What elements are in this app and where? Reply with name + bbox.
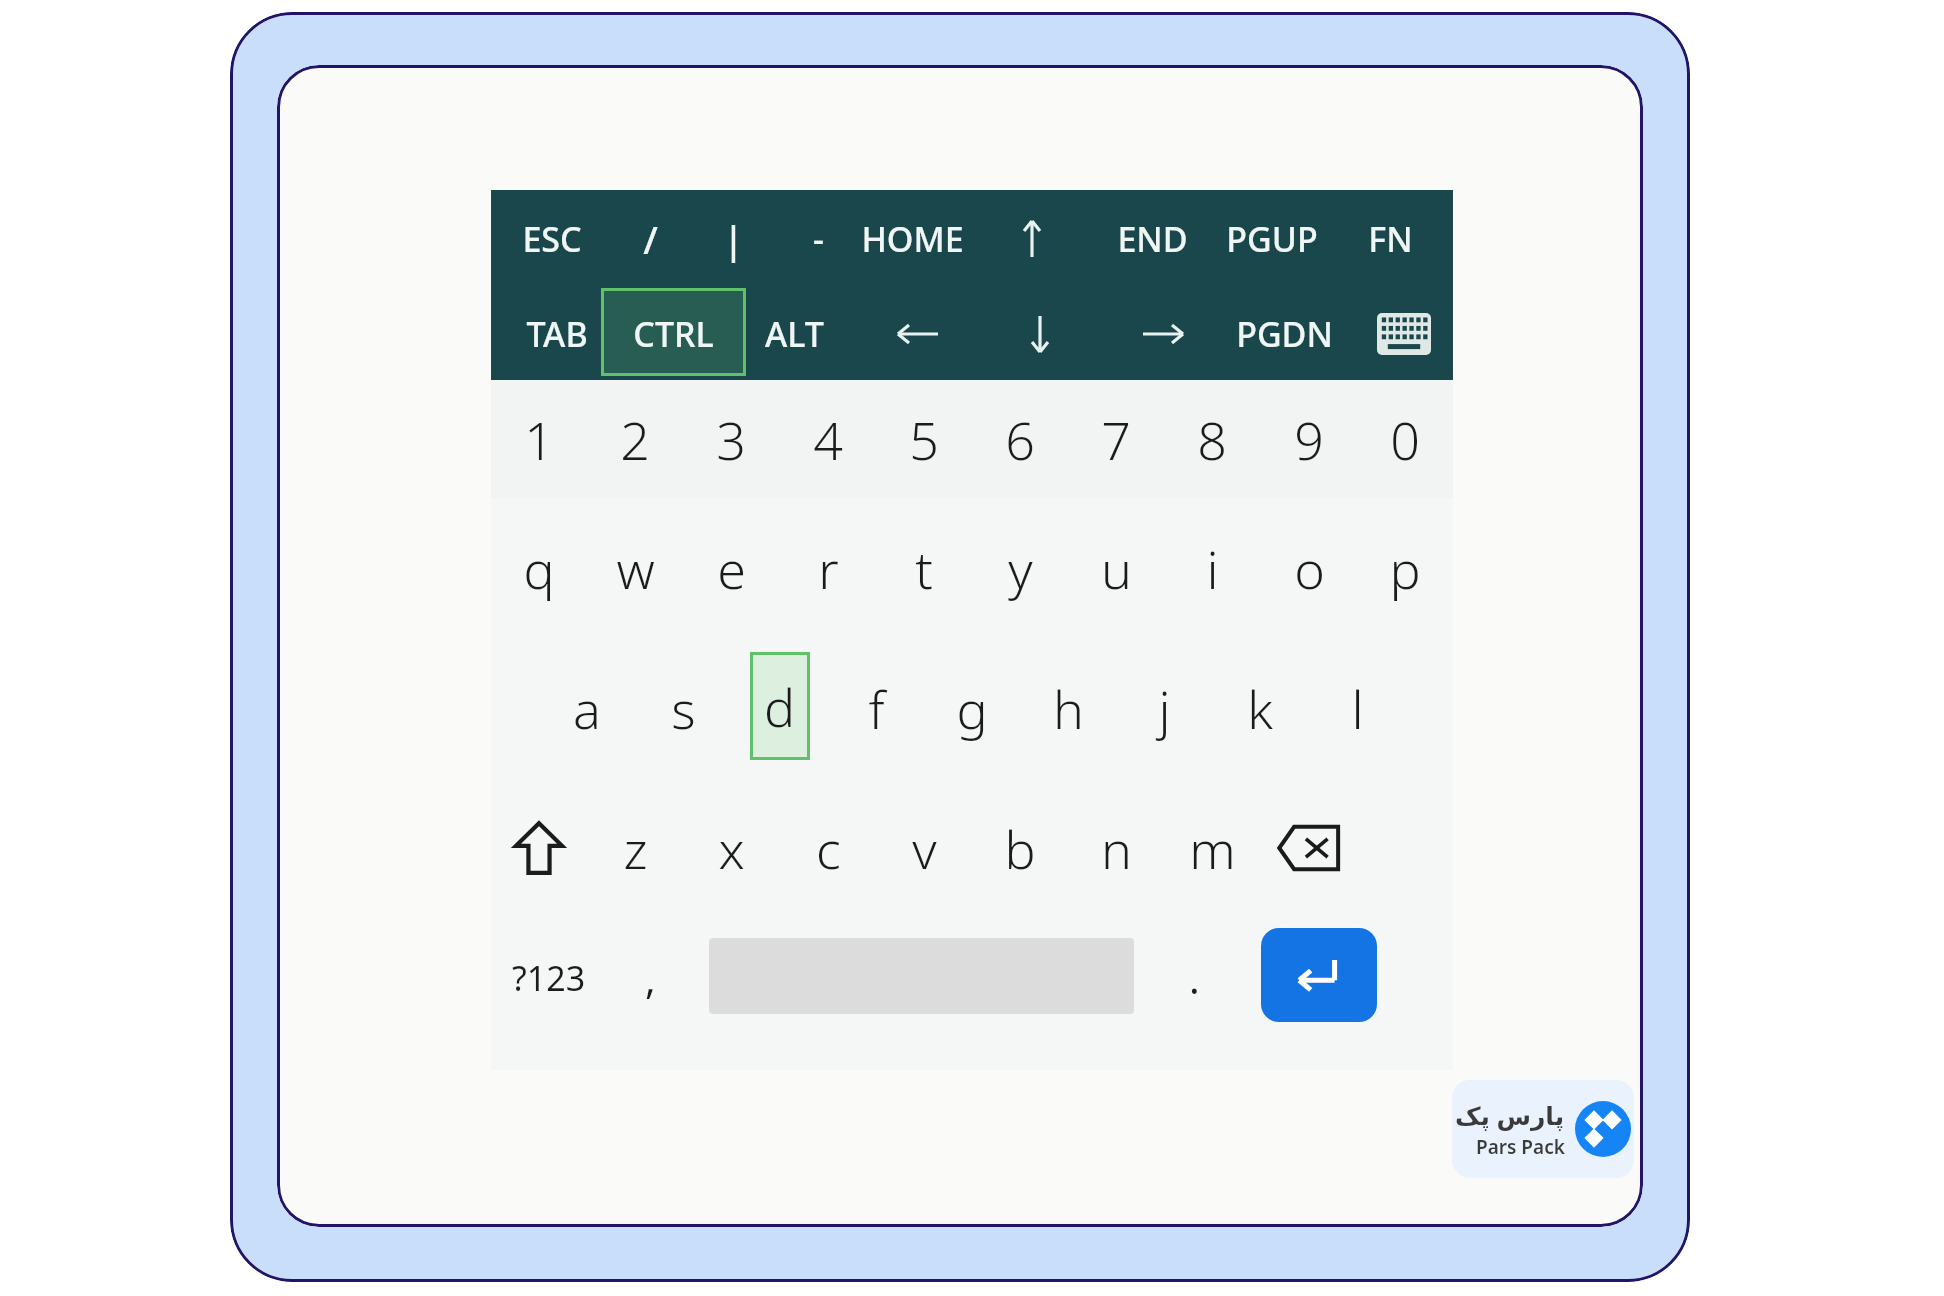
button[interactable]: 4 <box>780 380 876 498</box>
staticText: 9 <box>1294 404 1324 475</box>
button[interactable]: . <box>1151 918 1237 1038</box>
staticText: k <box>1247 673 1273 744</box>
staticText: TAB <box>526 311 588 357</box>
staticText: l <box>1351 673 1364 744</box>
staticText: | <box>723 213 744 265</box>
button[interactable]: y <box>972 498 1068 638</box>
button[interactable]: k <box>1212 638 1308 778</box>
staticText: 1 <box>524 404 554 475</box>
button[interactable]: x <box>683 778 779 918</box>
button[interactable]: l <box>1309 638 1405 778</box>
button[interactable]: ?123 <box>491 918 607 1038</box>
staticText: 8 <box>1197 404 1227 475</box>
button[interactable]: w <box>587 498 683 638</box>
staticText: f <box>868 673 885 744</box>
button[interactable]: END <box>1087 198 1217 280</box>
staticText: a <box>573 673 601 744</box>
button[interactable]: v <box>876 778 972 918</box>
button[interactable]: u <box>1068 498 1164 638</box>
button[interactable]: - <box>753 198 883 280</box>
button[interactable]: p <box>1357 498 1453 638</box>
button[interactable]: Shift <box>491 778 587 918</box>
staticText: HOME <box>861 216 964 262</box>
button[interactable]: c <box>780 778 876 918</box>
staticText: ?123 <box>512 955 586 1001</box>
button[interactable]: Arrow up <box>987 198 1077 280</box>
staticText: PGUP <box>1226 216 1318 262</box>
staticText: / <box>643 213 658 265</box>
button[interactable]: / <box>585 198 715 280</box>
button[interactable]: t <box>876 498 972 638</box>
button[interactable]: , <box>607 918 693 1038</box>
staticText: END <box>1117 216 1188 262</box>
button[interactable]: Arrow right <box>1118 293 1208 375</box>
button[interactable]: o <box>1261 498 1357 638</box>
staticText: FN <box>1368 216 1413 262</box>
staticText: 6 <box>1005 404 1035 475</box>
staticText: r <box>818 533 839 604</box>
button[interactable]: Hide keyboard <box>1359 293 1449 375</box>
staticText: 5 <box>909 404 939 475</box>
staticText: c <box>816 813 841 884</box>
staticText: q <box>523 533 555 604</box>
button[interactable]: 0 <box>1357 380 1453 498</box>
staticText: v <box>912 813 937 884</box>
staticText: پارس پک <box>1455 1098 1565 1132</box>
button[interactable]: 8 <box>1164 380 1260 498</box>
button[interactable]: q <box>491 498 587 638</box>
button[interactable]: a <box>539 638 635 778</box>
button[interactable]: | <box>668 198 798 280</box>
staticText: CTRL <box>633 311 714 357</box>
button[interactable]: CTRL <box>608 293 738 375</box>
button[interactable]: TAB <box>492 293 622 375</box>
staticText: s <box>671 673 696 744</box>
staticText: ESC <box>522 216 582 262</box>
staticText: z <box>623 813 648 884</box>
staticText: o <box>1294 533 1325 604</box>
button[interactable]: Pars Pack <box>1452 1080 1634 1178</box>
button[interactable]: j <box>1116 638 1212 778</box>
button[interactable]: i <box>1164 498 1260 638</box>
button[interactable]: r <box>780 498 876 638</box>
button[interactable]: n <box>1068 778 1164 918</box>
button[interactable]: f <box>828 638 924 778</box>
button[interactable]: g <box>924 638 1020 778</box>
staticText: 4 <box>813 404 843 475</box>
button[interactable]: ALT <box>729 293 859 375</box>
staticText: t <box>915 533 933 604</box>
button[interactable]: s <box>635 638 731 778</box>
button[interactable]: b <box>972 778 1068 918</box>
button[interactable]: FN <box>1325 198 1455 280</box>
staticText: u <box>1101 533 1132 604</box>
button[interactable]: e <box>683 498 779 638</box>
button[interactable]: 2 <box>587 380 683 498</box>
button[interactable]: 6 <box>972 380 1068 498</box>
button[interactable]: 5 <box>876 380 972 498</box>
button[interactable]: PGUP <box>1207 198 1337 280</box>
button[interactable]: 3 <box>683 380 779 498</box>
button[interactable]: 7 <box>1068 380 1164 498</box>
staticText: n <box>1101 813 1132 884</box>
button[interactable]: Backspace <box>1261 778 1357 918</box>
button[interactable]: Arrow down <box>995 293 1085 375</box>
button[interactable]: h <box>1020 638 1116 778</box>
button[interactable]: 1 <box>491 380 587 498</box>
button[interactable]: 9 <box>1261 380 1357 498</box>
staticText: y <box>1008 533 1033 604</box>
button[interactable] <box>601 288 746 376</box>
staticText: e <box>717 533 746 604</box>
button[interactable]: PGDN <box>1219 293 1349 375</box>
staticText: d <box>764 671 796 742</box>
button[interactable]: ESC <box>487 198 617 280</box>
staticText: x <box>718 813 745 884</box>
button[interactable]: z <box>587 778 683 918</box>
button[interactable]: Arrow left <box>873 293 963 375</box>
staticText: 3 <box>716 404 746 475</box>
button[interactable]: HOME <box>847 198 977 280</box>
staticText: h <box>1053 673 1084 744</box>
staticText: 0 <box>1390 404 1420 475</box>
button[interactable]: m <box>1164 778 1260 918</box>
button[interactable]: d <box>750 652 810 760</box>
button[interactable]: Enter <box>1261 928 1377 1022</box>
